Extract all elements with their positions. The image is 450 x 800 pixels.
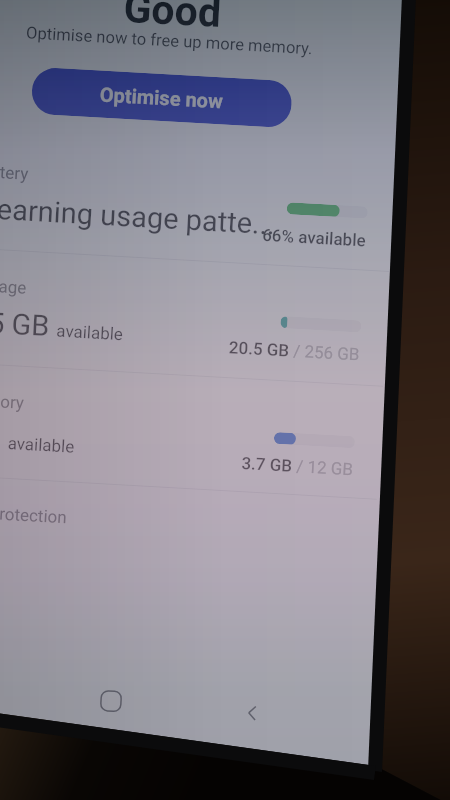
button[interactable]: Back xyxy=(240,700,265,726)
staticText: 3.7 GB / 12 GB xyxy=(241,453,354,479)
staticText: 66% available xyxy=(262,225,367,251)
staticText: Good xyxy=(122,0,223,37)
staticText: Learning usage patte... xyxy=(0,191,277,241)
staticText: 20.5 GB / 256 GB xyxy=(228,337,360,364)
staticText: Optimise now to free up more memory. xyxy=(26,23,313,58)
staticText: Memory xyxy=(0,389,25,413)
staticText: Optimise now xyxy=(99,83,224,112)
staticText: 20.5 GB available xyxy=(0,303,125,347)
button[interactable] xyxy=(0,246,407,386)
button[interactable]: Optimise now xyxy=(31,67,293,128)
button[interactable] xyxy=(0,131,414,271)
staticText: 8.3 GB available xyxy=(0,417,76,460)
staticText: App protection xyxy=(0,501,68,527)
staticText: Battery xyxy=(0,161,29,184)
button[interactable] xyxy=(0,361,401,501)
staticText: Storage xyxy=(0,274,27,298)
button[interactable]: Home xyxy=(98,688,124,714)
